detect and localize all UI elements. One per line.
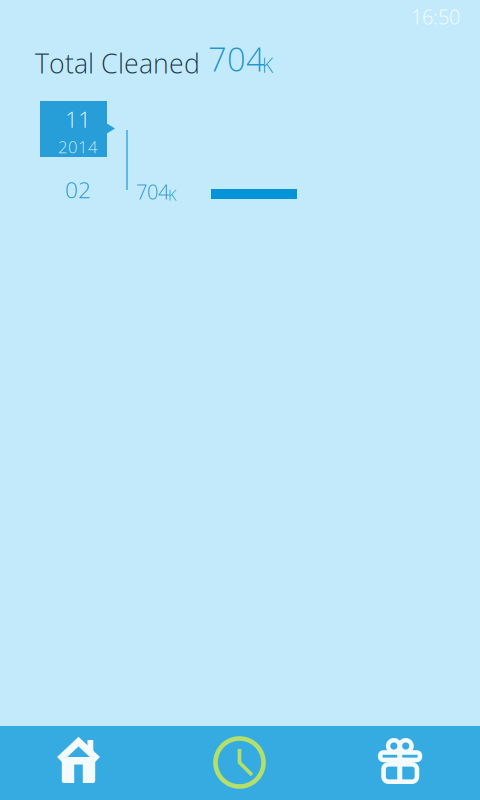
staticText: 02 [65,174,91,205]
staticText: Total Cleaned [35,45,200,81]
staticText: 2014 [58,135,98,158]
button[interactable]: Rewards [320,726,480,800]
staticText: K [262,52,273,78]
staticText: 11 [65,103,91,134]
button[interactable]: Home [0,726,160,800]
staticText: 704 [208,36,265,81]
staticText: K [168,185,177,205]
button[interactable]: History [160,726,320,800]
staticText: 16:50 [411,3,460,30]
staticText: 704 [136,178,169,205]
